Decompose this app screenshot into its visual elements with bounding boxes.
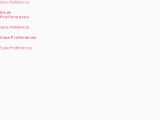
staticText: Save Preferences bbox=[0, 35, 36, 40]
staticText: Save Preferences bbox=[0, 46, 32, 50]
staticText: Save Preferences bbox=[0, 10, 29, 19]
staticText: Save Preferences bbox=[0, 0, 29, 4]
staticText: Save Preferences bbox=[0, 25, 29, 29]
